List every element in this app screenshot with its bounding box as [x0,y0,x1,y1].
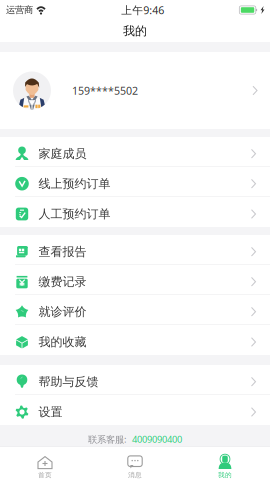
button[interactable]: 设置 [0,395,270,425]
staticText: 设置 [38,405,62,419]
staticText: 缴费记录 [38,274,86,289]
button[interactable]: 人工预约订单 [0,197,270,227]
button[interactable]: 帮助与反馈 [0,365,270,395]
button[interactable]: 家庭成员 [0,137,270,167]
staticText: 家庭成员 [38,146,86,161]
button[interactable]: 缴费记录 [0,265,270,295]
button[interactable]: 首页 [0,447,90,480]
staticText: 上午9:46 [121,3,164,17]
staticText: 就诊评价 [38,304,86,319]
staticText: 首页 [38,471,52,479]
staticText: 4009090400 [132,433,182,445]
staticText: 帮助与反馈 [38,374,98,389]
staticText: 我的 [218,471,232,479]
button[interactable]: 159****5502 [0,52,270,129]
button[interactable]: 我的收藏 [0,325,270,355]
staticText: 联系客服: [88,433,127,445]
button[interactable]: 线上预约订单 [0,167,270,197]
button[interactable]: 4009090400 [127,433,182,445]
staticText: 159****5502 [72,83,138,98]
staticText: 消息 [128,471,142,479]
staticText: 我的收藏 [38,335,86,349]
staticText: 线上预约订单 [38,176,110,191]
staticText: 我的 [123,24,147,38]
staticText: 查看报告 [38,244,86,259]
button[interactable]: 我的 [180,447,270,480]
button[interactable]: 消息 [90,447,180,480]
button[interactable]: 查看报告 [0,235,270,265]
staticText: 运营商 [6,4,33,16]
staticText: 人工预约订单 [38,207,110,221]
button[interactable]: 就诊评价 [0,295,270,325]
